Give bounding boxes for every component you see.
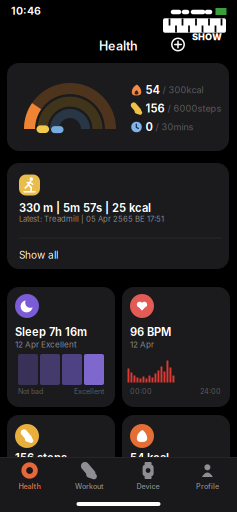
staticText: Profile [196, 482, 219, 491]
staticText: Show all [19, 249, 58, 261]
staticText: Workout [75, 482, 103, 491]
staticText: 156 [145, 102, 164, 115]
staticText: 54 [145, 83, 159, 97]
staticText: Device [137, 482, 160, 491]
staticText: 156 steps [15, 451, 67, 465]
staticText: 12 Apr [130, 340, 154, 349]
staticText: 10:46 [11, 5, 41, 17]
staticText: 96 BPM [130, 325, 171, 339]
staticText: 24:00 [200, 387, 221, 396]
staticText: 12 Apr Excellent [15, 340, 77, 349]
button[interactable]: 96 BPM [122, 287, 230, 407]
button[interactable]: 330 m | 5m 57s | 25 kcal [7, 163, 229, 269]
button[interactable]: 54 kcal [122, 415, 230, 512]
staticText: 54 kcal [130, 451, 169, 465]
button[interactable]: 54 [7, 63, 229, 151]
staticText: 0 [145, 120, 152, 134]
button[interactable]: Workout [61, 459, 117, 493]
staticText: 30mins [161, 121, 193, 132]
staticText: 300kcal [168, 84, 203, 95]
staticText: 330 m | 5m 57s | 25 kcal [19, 201, 151, 215]
staticText: SHOW [192, 31, 222, 42]
staticText: Not bad [18, 387, 43, 396]
staticText: / [155, 121, 158, 132]
button[interactable]: Profile [179, 459, 235, 493]
staticText: Latest: Treadmill | 05 Apr 2565 BE 17:51 [19, 214, 164, 224]
button[interactable]: 156 steps [7, 415, 115, 512]
staticText: Health [99, 38, 138, 53]
button[interactable]: Sleep 7h 16m [7, 287, 115, 407]
staticText: Sleep 7h 16m [15, 325, 87, 339]
staticText: / [162, 84, 165, 95]
staticText: / [167, 103, 170, 114]
staticText: 00:00 [130, 387, 152, 396]
staticText: Health [19, 482, 41, 491]
button[interactable]: Device [120, 459, 176, 493]
button[interactable]: Health [2, 459, 58, 493]
staticText: 6000steps [173, 103, 221, 114]
staticText: Excellent [74, 387, 104, 396]
